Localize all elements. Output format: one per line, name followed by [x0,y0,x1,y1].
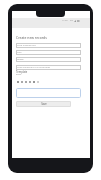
staticText: Create new records [16,35,47,40]
staticText: What inspires me? [17,44,36,47]
staticText: 4G [70,19,73,22]
staticText: 11:09 [62,19,68,22]
button[interactable]: Underline [24,80,27,84]
button[interactable]: Bold [16,80,19,84]
button[interactable]: Image [16,57,81,62]
button[interactable]: List [32,80,35,84]
staticText: Template [16,70,28,74]
button[interactable]: What inspires me? [16,43,81,48]
button[interactable]: Italic [20,80,23,84]
staticText: Image [17,58,24,61]
button[interactable]: Save [16,101,71,107]
button[interactable]: Title [16,50,81,55]
button[interactable]: Link [28,80,31,84]
staticText: Write Keyword if it is more fields [17,66,51,69]
staticText: Basic [16,73,22,76]
button[interactable]: Image [36,80,39,84]
staticText: Title [17,51,22,54]
staticText: Save [41,102,47,106]
button[interactable]: Write Keyword if it is more fields [16,65,81,70]
button[interactable] [16,88,81,98]
